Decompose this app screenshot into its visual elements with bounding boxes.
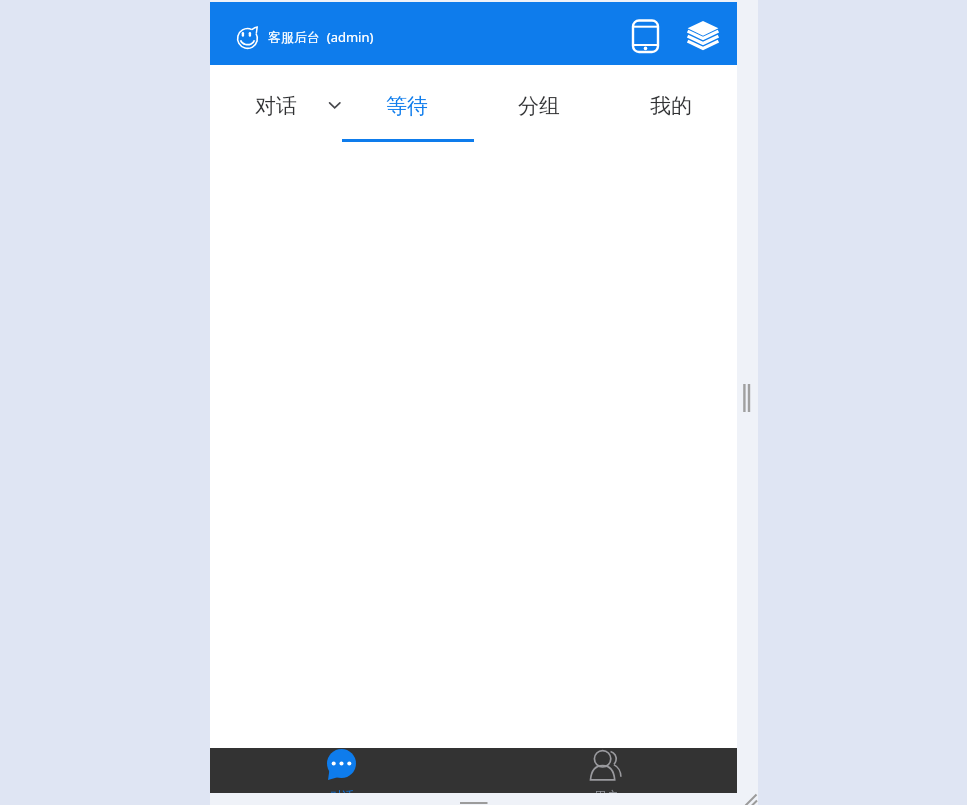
button[interactable] — [678, 11, 722, 57]
staticText: 我的 — [650, 93, 692, 119]
staticText: 用户 — [594, 788, 618, 793]
button[interactable]: 对话 — [287, 748, 397, 793]
staticText: 等待 — [386, 93, 428, 119]
staticText: 对话 — [330, 788, 354, 793]
staticText: 分组 — [518, 93, 560, 119]
button[interactable]: 分组 — [473, 65, 605, 145]
button[interactable]: 用户 — [550, 748, 660, 793]
button[interactable]: 对话 — [210, 65, 341, 145]
button[interactable]: 我的 — [605, 65, 737, 145]
staticText: 客服后台 (admin) — [268, 28, 374, 46]
button[interactable] — [623, 11, 667, 57]
button[interactable]: 等待 — [341, 65, 473, 145]
staticText: 对话 — [255, 93, 297, 119]
